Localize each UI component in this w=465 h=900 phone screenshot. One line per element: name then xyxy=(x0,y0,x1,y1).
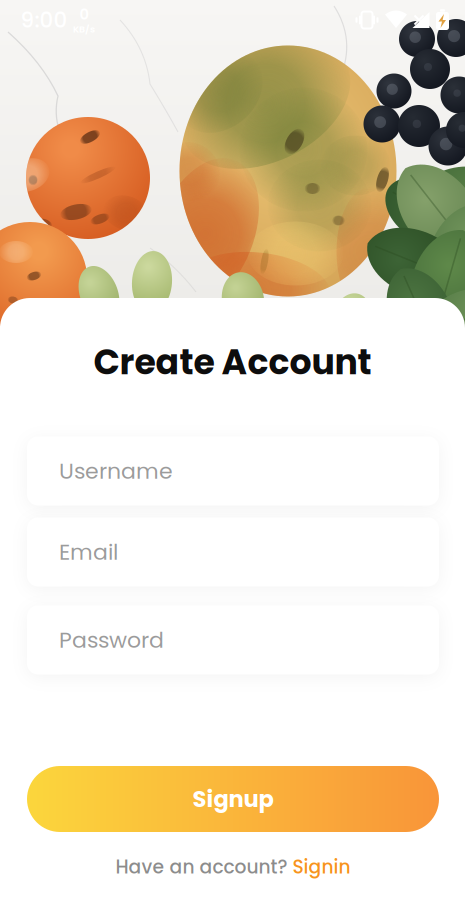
staticText: 9:00 xyxy=(20,5,67,35)
button[interactable]: Username xyxy=(27,436,439,505)
button[interactable]: Have an account? xyxy=(111,853,354,881)
staticText: 0 xyxy=(79,4,88,25)
staticText: Create Account xyxy=(93,338,371,386)
staticText: Username xyxy=(59,456,173,486)
button[interactable]: Password xyxy=(27,605,439,674)
button[interactable]: Signup xyxy=(27,766,439,832)
staticText: KB/s xyxy=(73,23,95,36)
staticText: Signup xyxy=(192,783,273,815)
staticText: Have an account? xyxy=(115,854,287,880)
staticText: Password xyxy=(59,625,164,655)
button[interactable]: Email xyxy=(27,517,439,586)
staticText: Email xyxy=(59,537,118,567)
staticText: Signin xyxy=(292,854,350,880)
